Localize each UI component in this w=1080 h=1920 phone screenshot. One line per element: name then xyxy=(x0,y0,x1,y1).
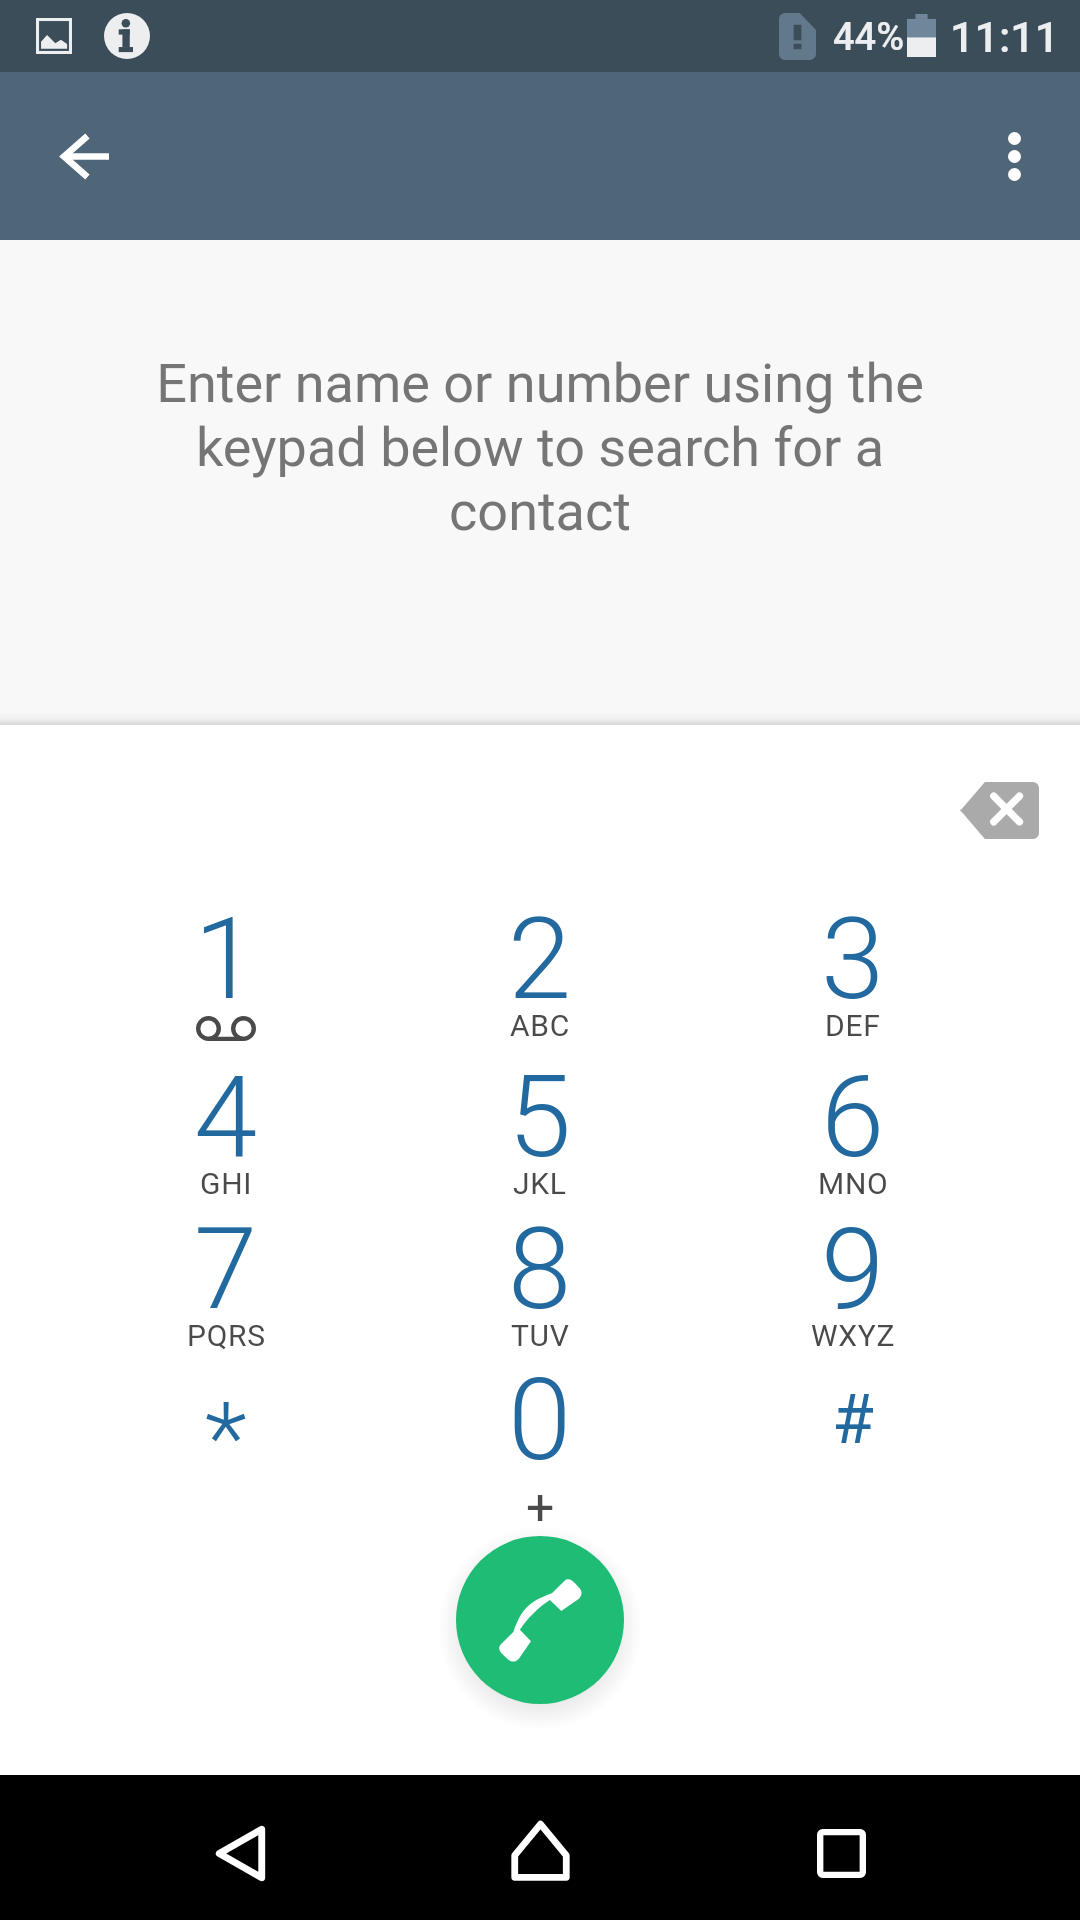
staticText: Enter name or number using the keypad be… xyxy=(135,352,945,543)
staticText: # xyxy=(832,1380,874,1460)
button[interactable]: Call xyxy=(456,1536,624,1704)
button[interactable]: Navigate up xyxy=(28,100,140,212)
button[interactable]: Key 2 xyxy=(390,881,690,1033)
staticText: 44% xyxy=(833,15,905,60)
staticText: 5 xyxy=(508,1050,572,1184)
button[interactable]: Back xyxy=(175,1793,305,1913)
staticText: 1 xyxy=(194,892,258,1026)
staticText: ABC xyxy=(510,1008,570,1043)
staticText: 0 xyxy=(508,1353,572,1487)
button[interactable]: * xyxy=(76,1346,376,1498)
button[interactable]: More options xyxy=(958,100,1070,212)
staticText: PQRS xyxy=(187,1318,266,1353)
staticText: 4 xyxy=(194,1050,258,1184)
staticText: GHI xyxy=(200,1166,253,1201)
staticText: 11:11 xyxy=(950,12,1060,62)
staticText: 6 xyxy=(821,1050,885,1184)
staticText: JKL xyxy=(513,1166,567,1201)
button[interactable]: # xyxy=(703,1344,1003,1496)
staticText: 3 xyxy=(821,892,885,1026)
button[interactable]: Key 6 xyxy=(703,1039,1003,1191)
staticText: + xyxy=(526,1479,555,1538)
staticText: * xyxy=(205,1381,247,1496)
staticText: 8 xyxy=(508,1202,572,1336)
button[interactable]: Recent apps xyxy=(776,1793,906,1913)
staticText: 9 xyxy=(821,1202,885,1336)
staticText: TUV xyxy=(511,1318,570,1353)
button[interactable]: Key 1 xyxy=(76,881,376,1033)
button[interactable]: Home xyxy=(475,1790,605,1910)
button[interactable]: Key 7 xyxy=(76,1191,376,1343)
button[interactable]: Key 4 xyxy=(76,1039,376,1191)
button[interactable]: Key 5 xyxy=(390,1039,690,1191)
button[interactable]: Key 0 xyxy=(390,1342,690,1494)
staticText: WXYZ xyxy=(811,1318,896,1353)
button[interactable]: Key 9 xyxy=(703,1191,1003,1343)
staticText: 7 xyxy=(194,1202,258,1336)
staticText: MNO xyxy=(818,1166,889,1201)
staticText: 2 xyxy=(508,892,572,1026)
button[interactable]: Backspace xyxy=(919,740,1079,880)
staticText: DEF xyxy=(825,1008,881,1043)
button[interactable]: Key 3 xyxy=(703,881,1003,1033)
button[interactable]: Key 8 xyxy=(390,1191,690,1343)
